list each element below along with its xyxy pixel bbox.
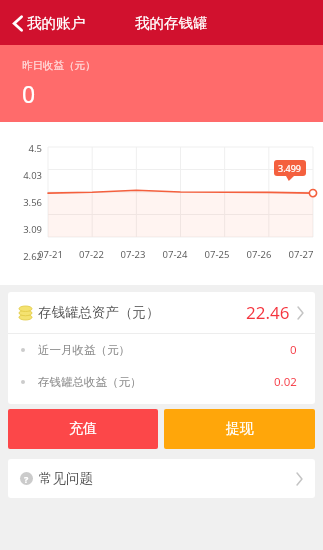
other: Back [12,15,24,32]
staticText: 常见问题 [39,470,93,487]
staticText: 3.09 [12,223,42,236]
button[interactable]: 存钱罐总资产（元） [8,292,315,333]
staticText: 07-26 [238,248,280,261]
staticText: 07-27 [280,248,322,261]
staticText: 0 [22,78,36,109]
staticText: 07-21 [30,248,71,261]
staticText: 0.02 [274,374,297,390]
button[interactable]: 充值 [8,409,158,449]
staticText: 存钱罐总收益（元） [38,375,142,389]
staticText: 提现 [226,420,254,438]
button[interactable]: Back [8,9,89,37]
staticText: 07-23 [112,248,154,261]
staticText: 07-25 [196,248,238,261]
staticText: 4.03 [12,169,42,182]
staticText: 4.5 [12,142,42,155]
button[interactable]: 存钱罐总收益（元） [8,366,315,398]
button[interactable]: 提现 [164,409,315,449]
staticText: 2.62 [12,250,42,263]
staticText: 07-24 [154,248,196,261]
staticText: 07-22 [71,248,112,261]
button[interactable]: 近一月收益（元） [8,334,315,366]
staticText: 3.499 [278,162,302,174]
staticText: 0 [290,342,297,358]
staticText: 我的存钱罐 [135,14,208,32]
staticText: 存钱罐总资产（元） [38,304,160,321]
staticText: 充值 [69,420,97,438]
button[interactable]: ? [8,459,315,498]
staticText: 昨日收益（元） [22,59,96,72]
staticText: 22.46 [246,301,290,324]
staticText: 3.56 [12,196,42,209]
staticText: 我的账户 [27,14,85,32]
staticText: 近一月收益（元） [38,343,130,357]
staticText: ? [24,473,29,485]
